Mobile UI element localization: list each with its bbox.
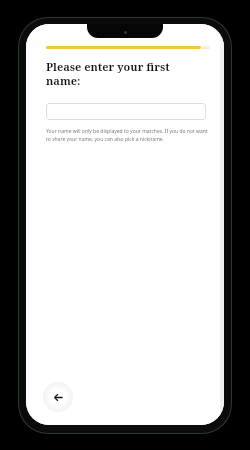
staticText: Your name will only be displayed to your…: [46, 128, 208, 142]
staticText: Please enter your first name:: [46, 59, 206, 88]
button[interactable]: Back: [43, 382, 73, 412]
button[interactable]: [46, 103, 206, 120]
